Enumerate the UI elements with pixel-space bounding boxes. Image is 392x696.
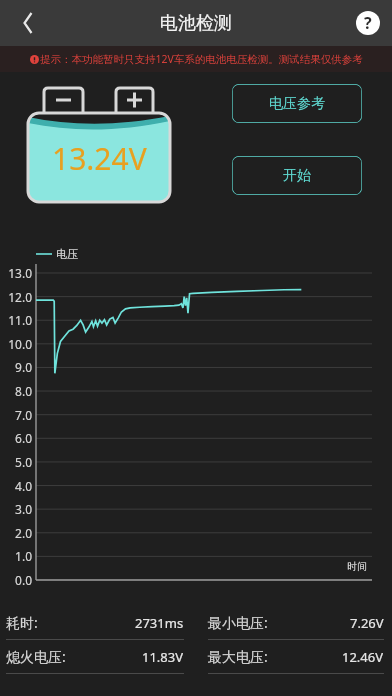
staticText: 4.0 — [0, 478, 32, 494]
staticText: 3.0 — [0, 501, 32, 517]
staticText: 10.0 — [0, 336, 32, 352]
button[interactable]: Back — [8, 3, 48, 43]
button[interactable]: Help — [353, 8, 383, 38]
staticText: 2731ms — [135, 614, 184, 632]
staticText: 电池检测 — [160, 12, 232, 35]
button[interactable]: 电压参考 — [232, 84, 362, 123]
staticText: 11.83V — [142, 648, 184, 666]
staticText: 13.0 — [0, 265, 32, 281]
staticText: 2.0 — [0, 525, 32, 541]
staticText: 熄火电压: — [6, 647, 66, 666]
staticText: 5.0 — [0, 454, 32, 470]
button[interactable]: 开始 — [232, 156, 362, 195]
staticText: ? — [364, 12, 372, 34]
staticText: 9.0 — [0, 359, 32, 375]
staticText: 耗时: — [6, 613, 38, 632]
staticText: 11.0 — [0, 312, 32, 328]
staticText: 电压 — [56, 247, 78, 261]
staticText: 12.46V — [342, 648, 384, 666]
staticText: 0.0 — [0, 572, 32, 588]
staticText: 最小电压: — [208, 613, 268, 632]
staticText: 提示：本功能暂时只支持12V车系的电池电压检测。测试结果仅供参考 — [40, 52, 363, 66]
staticText: 电压参考 — [269, 95, 325, 113]
staticText: 13.24V — [52, 138, 147, 179]
staticText: 12.0 — [0, 289, 32, 305]
staticText: 6.0 — [0, 430, 32, 446]
staticText: 开始 — [283, 167, 311, 185]
staticText: 最大电压: — [208, 647, 268, 666]
staticText: 1.0 — [0, 548, 32, 564]
staticText: 7.0 — [0, 407, 32, 423]
staticText: 7.26V — [350, 614, 384, 632]
staticText: 时间 — [347, 560, 367, 573]
staticText: 8.0 — [0, 383, 32, 399]
